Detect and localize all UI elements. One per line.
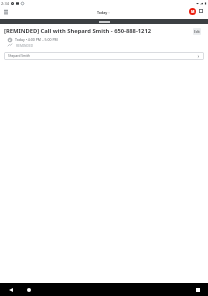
button[interactable]: Recents [193, 285, 202, 294]
staticText: Today • 4:00 PM – 5:00 PM [15, 37, 58, 42]
staticText: 2:34 [1, 1, 9, 6]
button[interactable]: Edit [193, 28, 201, 35]
button[interactable]: Back [6, 285, 15, 294]
staticText: REMINDED [16, 43, 34, 47]
button[interactable]: Apps [199, 9, 203, 13]
button[interactable]: Account [189, 8, 196, 15]
staticText: [REMINDED] Call with Shepard Smith - 650… [4, 27, 152, 35]
staticText: M [191, 9, 195, 14]
button[interactable]: Home [24, 285, 33, 294]
staticText: Today [97, 10, 108, 15]
button[interactable]: Shepard Smith [4, 52, 204, 60]
button[interactable]: Menu [4, 10, 8, 14]
button[interactable]: Today [97, 10, 110, 15]
staticText: Edit [194, 30, 200, 34]
staticText: Shepard Smith [8, 54, 30, 58]
